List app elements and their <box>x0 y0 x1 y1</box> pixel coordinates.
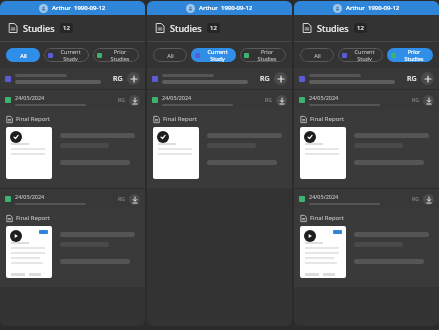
button[interactable]: Open report <box>6 127 52 179</box>
staticText: Final Report <box>16 115 50 123</box>
button[interactable]: RG <box>147 68 292 89</box>
staticText: All <box>20 52 27 59</box>
staticText: 24/05/2024 <box>15 94 45 101</box>
staticText: Studies <box>170 22 202 34</box>
staticText: Current Study <box>203 48 232 62</box>
staticText: Current Study <box>56 48 85 62</box>
staticText: RG <box>407 74 417 84</box>
staticText: All <box>314 52 321 59</box>
staticText: Prior Studies <box>399 48 429 62</box>
button[interactable]: Prior Studies <box>387 48 433 62</box>
staticText: 24/05/2024 <box>309 193 339 200</box>
staticText: Final Report <box>310 214 344 222</box>
button[interactable]: Download <box>423 95 434 106</box>
staticText: Final Report <box>16 214 50 222</box>
button[interactable]: Prior Studies <box>240 48 286 62</box>
button[interactable]: 24/05/2024 <box>0 189 145 209</box>
button[interactable]: 24/05/2024 <box>294 90 439 110</box>
button[interactable]: Prior Studies <box>93 48 139 62</box>
button[interactable]: All <box>6 48 40 62</box>
button[interactable]: Open report <box>300 127 346 179</box>
staticText: Arthur 1990-09-12 <box>346 4 400 12</box>
staticText: 12 <box>357 24 364 32</box>
button[interactable]: Add <box>421 72 434 85</box>
staticText: 24/05/2024 <box>15 193 45 200</box>
button[interactable]: Download <box>276 95 287 106</box>
staticText: RG <box>265 97 272 104</box>
staticText: 24/05/2024 <box>162 94 192 101</box>
staticText: Studies <box>23 22 55 34</box>
button[interactable]: Current Study <box>191 48 236 62</box>
button[interactable]: Download <box>129 194 140 205</box>
button[interactable]: 24/05/2024 <box>0 90 145 110</box>
button[interactable]: All <box>300 48 334 62</box>
staticText: RG <box>118 97 125 104</box>
button[interactable]: RG <box>0 68 145 89</box>
staticText: Studies <box>317 22 349 34</box>
staticText: 12 <box>210 24 217 32</box>
staticText: Arthur 1990-09-12 <box>199 4 253 12</box>
button[interactable]: Download <box>423 194 434 205</box>
button[interactable]: Add <box>127 72 140 85</box>
button[interactable]: Open report <box>300 226 346 278</box>
button[interactable]: Download <box>129 95 140 106</box>
staticText: RG <box>412 196 419 203</box>
staticText: Current Study <box>350 48 379 62</box>
button[interactable]: Open report <box>153 127 199 179</box>
staticText: RG <box>118 196 125 203</box>
staticText: 12 <box>63 24 70 32</box>
button[interactable]: 24/05/2024 <box>147 90 292 110</box>
button[interactable]: Add <box>274 72 287 85</box>
button[interactable]: 24/05/2024 <box>294 189 439 209</box>
staticText: RG <box>260 74 270 84</box>
button[interactable]: All <box>153 48 187 62</box>
staticText: RG <box>113 74 123 84</box>
staticText: Final Report <box>310 115 344 123</box>
staticText: RG <box>412 97 419 104</box>
button[interactable]: RG <box>294 68 439 89</box>
staticText: Final Report <box>163 115 197 123</box>
button[interactable]: Current Study <box>338 48 383 62</box>
button[interactable]: Current Study <box>44 48 89 62</box>
button[interactable]: Open report <box>6 226 52 278</box>
staticText: All <box>167 52 174 59</box>
staticText: Prior Studies <box>105 48 135 62</box>
staticText: 24/05/2024 <box>309 94 339 101</box>
staticText: Prior Studies <box>252 48 282 62</box>
staticText: Arthur 1990-09-12 <box>52 4 106 12</box>
